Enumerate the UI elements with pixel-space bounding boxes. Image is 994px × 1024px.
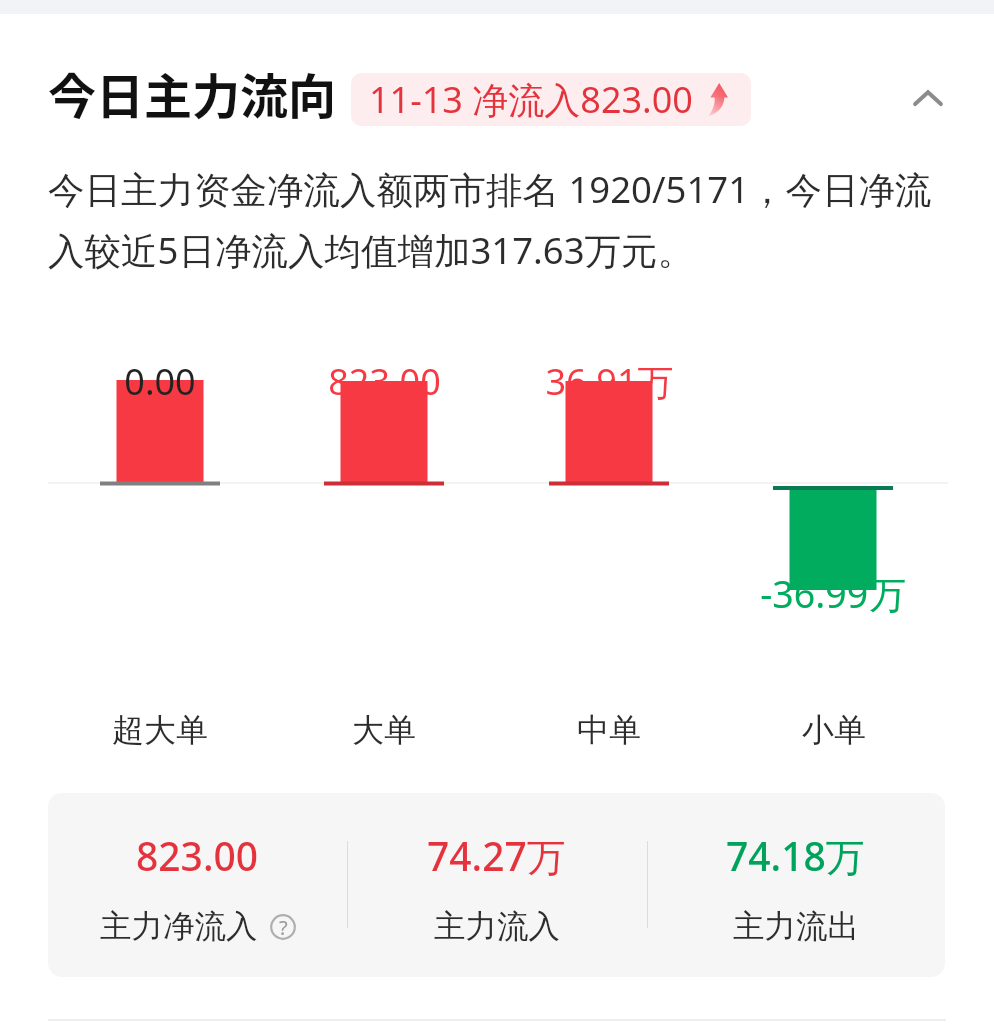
staticText: 超大单 [112, 710, 208, 750]
staticText: 小单 [802, 710, 866, 750]
staticText: 大单 [352, 710, 416, 750]
staticText: -36.99万 [760, 568, 906, 619]
staticText: 823.00 [328, 357, 441, 406]
button[interactable]: 74.18万 [646, 793, 945, 977]
button[interactable]: Collapse section [896, 66, 960, 130]
button[interactable]: 74.27万 [347, 793, 646, 977]
button[interactable]: 11-13 净流入823.00 [351, 73, 751, 126]
staticText: 0.00 [124, 357, 196, 406]
staticText: 36.91万 [545, 357, 674, 406]
staticText: 823.00 [136, 829, 259, 882]
staticText: 今日主力资金净流入额两市排名 1920/5171，今日净流入较近5日净流入均值增… [48, 164, 950, 274]
staticText: 今日主力流向 [48, 58, 337, 128]
staticText: 74.18万 [726, 829, 865, 882]
staticText: 主力流入 [434, 907, 560, 947]
staticText: 11-13 净流入823.00 [369, 75, 693, 124]
button[interactable]: 823.00 [48, 793, 347, 977]
staticText: ? [279, 914, 288, 940]
staticText: 主力净流入 [100, 907, 258, 947]
staticText: 74.27万 [427, 829, 566, 882]
staticText: 主力流出 [733, 907, 859, 947]
staticText: 中单 [577, 710, 641, 750]
